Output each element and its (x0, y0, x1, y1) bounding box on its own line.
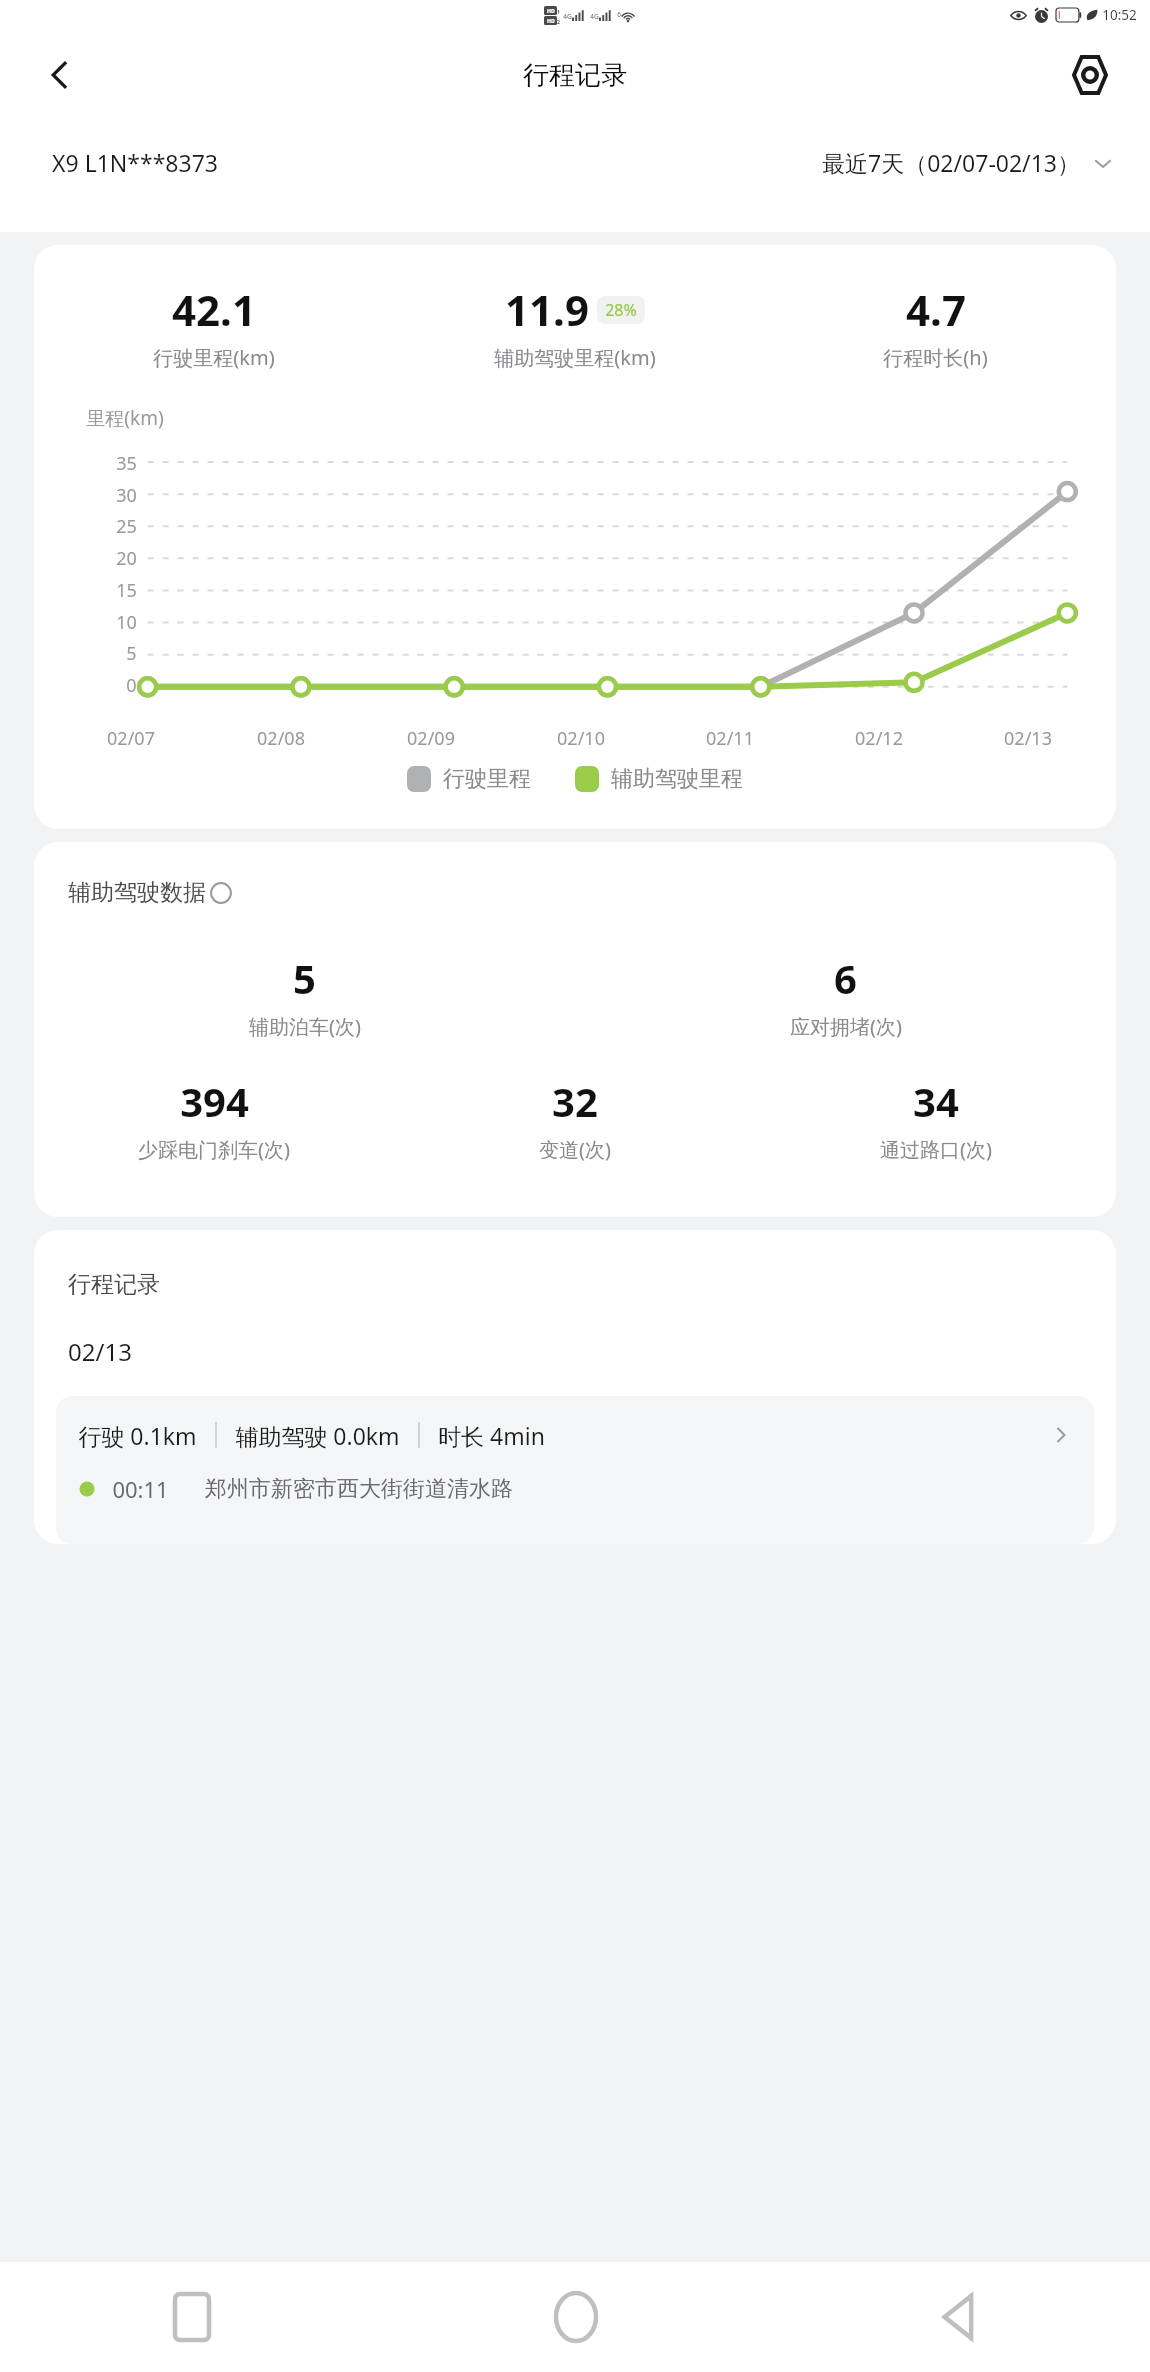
button[interactable]: Back (767, 2262, 1150, 2372)
staticText: 02/11 (706, 726, 754, 751)
staticText: 35 (116, 451, 137, 476)
staticText: 行程记录 (68, 1270, 160, 1299)
staticText: 行程记录 (523, 59, 627, 92)
staticText: 通过路口(次) (880, 1136, 992, 1163)
button[interactable]: 行驶 0.1km (56, 1396, 1094, 1544)
staticText: 行程时长(h) (883, 344, 988, 371)
staticText: 4G (563, 12, 572, 21)
staticText: 变道(次) (539, 1136, 611, 1163)
staticText: 28% (605, 299, 637, 321)
staticText: 辅助驾驶里程 (611, 765, 743, 793)
staticText: 4.7 (906, 281, 966, 338)
button[interactable]: 辅助驾驶数据 (68, 878, 232, 907)
staticText: 时长 4min (438, 1420, 545, 1451)
button[interactable]: Recents (0, 2262, 384, 2372)
staticText: 5 (293, 951, 316, 1005)
button[interactable]: X9 L1N***8373 (52, 147, 218, 178)
staticText: 02/10 (557, 726, 605, 751)
staticText: 10:52 (1102, 6, 1137, 24)
button[interactable]: Settings (1054, 39, 1126, 111)
staticText: 02/07 (107, 726, 155, 751)
staticText: 11.9 (505, 281, 589, 338)
staticText: 辅助泊车(次) (249, 1013, 361, 1040)
staticText: 1 (557, 8, 560, 15)
staticText: 应对拥堵(次) (790, 1013, 902, 1040)
staticText: 02/08 (257, 726, 305, 751)
staticText: 4G (590, 12, 599, 21)
staticText: 25 (116, 514, 137, 539)
staticText: 行驶 0.1km (78, 1420, 197, 1451)
staticText: 5 (126, 641, 137, 666)
staticText: 最近7天（02/07-02/13） (822, 147, 1080, 178)
staticText: 34 (913, 1074, 959, 1128)
staticText: 2 (557, 18, 560, 25)
staticText: 02/13 (1004, 726, 1052, 751)
staticText: HD (547, 7, 555, 14)
staticText: 郑州市新密市西大街街道清水路 (205, 1475, 513, 1503)
staticText: 少踩电门刹车(次) (138, 1136, 290, 1163)
staticText: 02/12 (855, 726, 903, 751)
staticText: 行驶里程 (443, 765, 531, 793)
staticText: HD (547, 17, 555, 24)
staticText: 0 (126, 673, 137, 698)
staticText: 30 (116, 483, 137, 508)
staticText: 00:11 (112, 1474, 169, 1504)
staticText: 02/13 (68, 1335, 132, 1368)
staticText: 10 (116, 610, 137, 635)
staticText: 02/09 (407, 726, 455, 751)
staticText: 15 (116, 578, 137, 603)
button[interactable]: Back (24, 39, 96, 111)
staticText: 394 (180, 1074, 249, 1128)
staticText: 20 (116, 546, 137, 571)
staticText: 行驶里程(km) (153, 344, 275, 371)
button[interactable]: Home (384, 2262, 767, 2372)
staticText: 32 (552, 1074, 598, 1128)
button[interactable]: 最近7天（02/07-02/13） (822, 147, 1150, 178)
staticText: 辅助驾驶里程(km) (494, 344, 656, 371)
staticText: 辅助驾驶数据 (68, 878, 206, 907)
staticText: 辅助驾驶 0.0km (235, 1420, 400, 1451)
staticText: X9 L1N***8373 (52, 147, 218, 178)
staticText: 6 (834, 951, 857, 1005)
staticText: 6 (617, 10, 621, 19)
staticText: 42.1 (172, 281, 256, 338)
staticText: 里程(km) (86, 405, 164, 431)
